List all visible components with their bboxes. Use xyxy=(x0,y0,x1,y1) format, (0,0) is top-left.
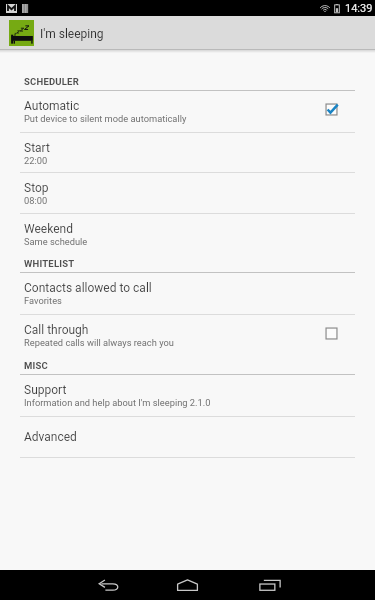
button[interactable]: Stop xyxy=(0,173,375,214)
staticText: 22:00 xyxy=(24,155,48,166)
button[interactable]: Start xyxy=(0,133,375,173)
button[interactable]: Automatic xyxy=(0,91,375,133)
staticText: Put device to silent mode automatically xyxy=(24,113,187,124)
staticText: Start xyxy=(24,141,50,155)
staticText: Information and help about I'm sleeping … xyxy=(24,397,211,408)
button[interactable]: Call through xyxy=(0,315,375,356)
button[interactable]: Home xyxy=(157,570,218,600)
staticText: Repeated calls will always reach you xyxy=(24,337,174,348)
button[interactable]: Contacts allowed to call xyxy=(0,273,375,315)
staticText: Support xyxy=(24,383,67,397)
staticText: WHITELIST xyxy=(24,258,75,269)
staticText: Favorites xyxy=(24,295,62,306)
button[interactable]: Weekend xyxy=(0,214,375,254)
button[interactable]: Back xyxy=(77,570,138,600)
staticText: Call through xyxy=(24,323,89,337)
staticText: 08:00 xyxy=(24,195,48,206)
staticText: 14:39 xyxy=(345,2,373,15)
button[interactable]: Advanced xyxy=(0,417,375,458)
button[interactable]: Recent apps xyxy=(239,570,300,600)
staticText: Stop xyxy=(24,181,49,195)
staticText: I'm sleeping xyxy=(40,27,104,41)
staticText: Automatic xyxy=(24,99,80,113)
staticText: SCHEDULER xyxy=(24,76,79,87)
staticText: Advanced xyxy=(24,430,77,444)
staticText: MISC xyxy=(24,360,48,371)
staticText: Contacts allowed to call xyxy=(24,281,152,295)
staticText: Weekend xyxy=(24,222,73,236)
button[interactable]: Support xyxy=(0,375,375,417)
staticText: Same schedule xyxy=(24,236,88,247)
